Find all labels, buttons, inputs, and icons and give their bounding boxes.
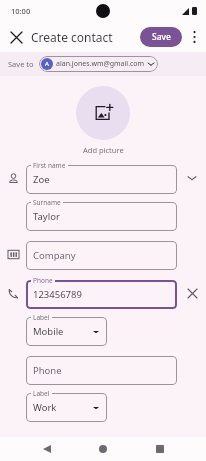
button[interactable]: A — [39, 56, 158, 72]
button[interactable]: Add picture — [76, 86, 130, 140]
button[interactable]: Expand name fields — [182, 168, 202, 188]
staticText: Phone — [33, 276, 53, 285]
staticText: Add picture — [83, 145, 124, 155]
button[interactable]: Zoe — [26, 165, 177, 194]
button[interactable]: 123456789 — [26, 280, 177, 309]
staticText: Company — [33, 249, 76, 262]
staticText: Label — [33, 313, 50, 322]
staticText: Taylor — [33, 210, 60, 223]
button[interactable]: Taylor — [26, 202, 177, 231]
staticText: First name — [33, 161, 66, 170]
staticText: alan.jones.wm@gmail.com — [56, 59, 145, 69]
button[interactable]: Mobile — [26, 317, 107, 346]
staticText: 123456789 — [33, 288, 82, 301]
button[interactable]: Save — [140, 27, 182, 47]
button[interactable]: Work — [26, 393, 107, 422]
button[interactable]: Company — [4, 245, 22, 263]
button[interactable]: More options — [184, 27, 204, 47]
staticText: Save to — [8, 59, 34, 69]
staticText: Create contact — [31, 29, 113, 45]
staticText: Work — [33, 401, 57, 414]
staticText: A — [45, 60, 49, 68]
staticText: Save — [152, 31, 171, 43]
button[interactable]: Phone — [26, 356, 177, 385]
button[interactable]: Home — [93, 439, 113, 459]
button[interactable]: Back — [37, 439, 57, 459]
button[interactable]: Phone — [4, 284, 22, 302]
button[interactable]: Clear phone number — [182, 283, 202, 303]
staticText: Mobile — [33, 325, 64, 338]
button[interactable]: Recent apps — [150, 439, 170, 459]
button[interactable]: Close — [4, 25, 28, 49]
staticText: Label — [33, 389, 50, 398]
button[interactable]: Name — [4, 169, 22, 187]
staticText: Zoe — [33, 173, 50, 186]
staticText: Phone — [33, 364, 62, 377]
staticText: Surname — [33, 198, 61, 207]
button[interactable]: Company — [26, 241, 177, 270]
staticText: 10:00 — [11, 6, 31, 16]
